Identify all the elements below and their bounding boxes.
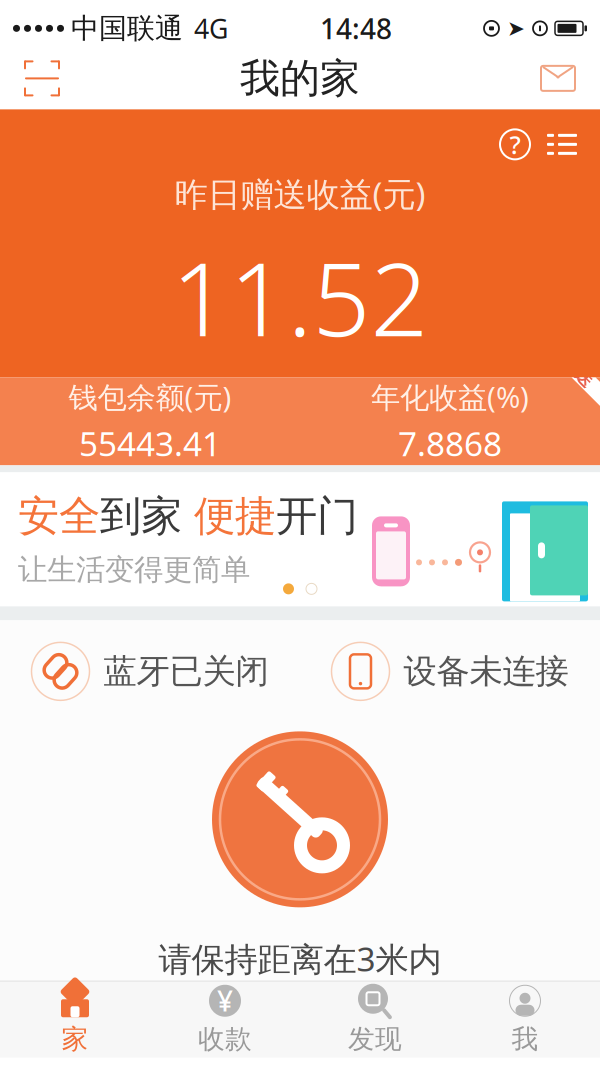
staticText: 让生活变得更简单 xyxy=(18,552,250,588)
staticText: 到家 xyxy=(100,491,182,542)
button[interactable]: 设备未连接 xyxy=(300,642,600,700)
staticText: 中国联通 xyxy=(71,11,183,46)
staticText: ¥ xyxy=(217,982,233,1019)
button[interactable]: ¥ xyxy=(150,982,300,1058)
button[interactable]: 帮助 xyxy=(492,121,538,167)
button[interactable]: 蓝牙已关闭 xyxy=(0,642,300,700)
staticText: 7.8868 xyxy=(398,421,502,465)
staticText: 设备未连接 xyxy=(403,651,568,692)
staticText: 便捷 xyxy=(182,491,276,542)
staticText: ➤ xyxy=(507,16,525,40)
button[interactable]: 消息 xyxy=(528,50,588,106)
button[interactable]: 发现 xyxy=(300,982,450,1058)
staticText: 我的家 xyxy=(240,54,360,103)
button[interactable]: 开门 xyxy=(205,724,395,914)
button[interactable]: 明细 xyxy=(538,122,586,166)
staticText: 4G xyxy=(194,11,228,46)
staticText: 安全 xyxy=(18,491,100,542)
staticText: 赠送 xyxy=(561,361,595,382)
staticText: 家 xyxy=(61,1023,88,1056)
staticText: 收款 xyxy=(198,1023,252,1056)
staticText: 开门 xyxy=(276,491,358,542)
button[interactable]: 我 xyxy=(450,982,600,1058)
button[interactable]: 家 xyxy=(0,982,150,1058)
staticText: 请保持距离在3米内 xyxy=(158,936,441,981)
staticText: 我 xyxy=(511,1023,538,1056)
staticText: 蓝牙已关闭 xyxy=(103,651,268,692)
staticText: ? xyxy=(509,127,520,161)
staticText: 11.52 xyxy=(171,230,428,364)
staticText: 发现 xyxy=(348,1023,402,1056)
staticText: 年化收益(%) xyxy=(371,377,529,416)
staticText: 55443.41 xyxy=(79,421,221,465)
staticText: 钱包余额(元) xyxy=(68,377,231,416)
staticText: 14:48 xyxy=(320,10,392,47)
button[interactable]: 扫一扫 xyxy=(12,50,72,106)
staticText: 昨日赠送收益(元) xyxy=(174,171,425,216)
